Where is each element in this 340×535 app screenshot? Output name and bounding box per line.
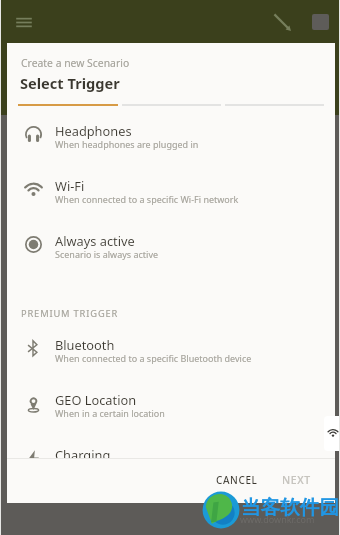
button[interactable]: GEO Location — [7, 382, 335, 437]
button[interactable]: Wi-Fi — [7, 168, 335, 223]
button[interactable]: Edit — [272, 12, 292, 32]
staticText: NEXT — [282, 473, 311, 487]
button[interactable]: Menu — [12, 10, 36, 34]
staticText: PREMIUM TRIGGER — [21, 307, 119, 320]
button[interactable]: Always active — [7, 223, 335, 278]
staticText: Bluetooth — [55, 336, 115, 353]
button[interactable]: Stop — [312, 14, 329, 30]
staticText: When headphones are plugged in — [55, 138, 199, 150]
staticText: Scenario is always active — [55, 248, 159, 260]
staticText: CANCEL — [216, 473, 258, 487]
staticText: When connected to a specific Bluetooth d… — [55, 352, 252, 364]
button[interactable]: Bluetooth — [7, 327, 335, 382]
staticText: Select Trigger — [20, 73, 120, 93]
staticText: Wi-Fi — [55, 177, 85, 194]
staticText: Always active — [55, 232, 135, 249]
staticText: When in a certain location — [55, 407, 165, 419]
staticText: www.downkr.com — [240, 513, 315, 525]
staticText: GEO Location — [55, 391, 137, 408]
staticText: Create a new Scenario — [21, 56, 130, 70]
button[interactable]: Charging — [7, 437, 335, 458]
staticText: When connected to a specific Wi-Fi netwo… — [55, 193, 239, 205]
button[interactable]: Headphones — [7, 113, 335, 168]
button[interactable]: CANCEL — [208, 468, 266, 492]
button[interactable]: NEXT — [274, 468, 319, 492]
staticText: Headphones — [55, 122, 132, 139]
staticText: 当客软件园 — [241, 495, 339, 520]
button[interactable]: Wi-Fi — [324, 416, 340, 451]
staticText: Charging — [55, 446, 111, 458]
